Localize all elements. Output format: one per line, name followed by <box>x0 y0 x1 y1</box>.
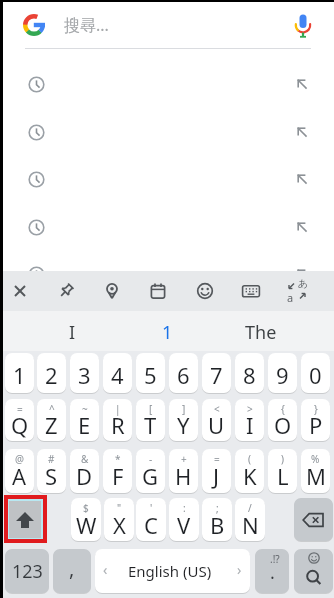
button[interactable]: 5 <box>136 353 165 393</box>
staticText: * <box>115 452 121 466</box>
button[interactable] <box>0 203 334 251</box>
staticText: ‹ <box>103 560 108 579</box>
button[interactable]: @ <box>5 449 34 493</box>
staticText: R <box>111 410 125 440</box>
button[interactable]: 123 <box>5 549 49 593</box>
button[interactable]: < <box>202 399 231 441</box>
staticText: = <box>214 452 220 466</box>
staticText: % <box>311 452 320 466</box>
button[interactable] <box>0 155 334 203</box>
button[interactable] <box>9 501 41 538</box>
staticText: C <box>144 510 158 540</box>
button[interactable] <box>234 274 268 308</box>
button[interactable]: $ <box>71 498 101 541</box>
staticText: ; <box>216 501 219 515</box>
button[interactable] <box>294 498 333 541</box>
button[interactable]: 4 <box>103 353 132 393</box>
button[interactable] <box>0 60 334 108</box>
staticText: 9 <box>276 360 289 390</box>
button[interactable]: 0 <box>301 353 330 393</box>
button[interactable]: .!? <box>255 549 289 593</box>
staticText: @ <box>15 452 24 466</box>
staticText: 4 <box>111 360 124 390</box>
button[interactable]: あ <box>280 274 314 308</box>
staticText: O <box>274 410 292 440</box>
button[interactable]: / <box>235 498 265 541</box>
button[interactable] <box>0 108 334 156</box>
staticText: K <box>243 461 257 491</box>
button[interactable]: % <box>301 449 330 493</box>
button[interactable]: * <box>103 449 132 493</box>
staticText: ] <box>182 402 186 416</box>
staticText: あ <box>298 277 309 290</box>
button[interactable] <box>95 274 129 308</box>
staticText: = <box>17 402 23 416</box>
button[interactable] <box>188 274 222 308</box>
button[interactable]: ] <box>169 399 198 441</box>
staticText: # <box>48 452 55 466</box>
button[interactable]: [ <box>136 399 165 441</box>
button[interactable] <box>49 274 83 308</box>
staticText: 2 <box>45 360 58 390</box>
staticText: 123 <box>12 559 43 584</box>
staticText: " <box>117 501 122 515</box>
button[interactable]: 2 <box>37 353 66 393</box>
staticText: The <box>245 320 277 345</box>
button[interactable]: + <box>169 449 198 493</box>
button[interactable]: > <box>235 399 264 441</box>
button[interactable]: , <box>53 549 91 593</box>
button[interactable]: 1 <box>122 311 212 351</box>
button[interactable]: The <box>216 311 306 351</box>
button[interactable]: ; <box>202 498 232 541</box>
staticText: U <box>208 410 225 440</box>
staticText: : <box>183 501 186 515</box>
button[interactable]: 7 <box>202 353 231 393</box>
staticText: I <box>69 320 76 345</box>
button[interactable] <box>3 274 37 308</box>
button[interactable]: 6 <box>169 353 198 393</box>
button[interactable]: " <box>104 498 134 541</box>
staticText: + <box>181 452 187 466</box>
staticText: H <box>175 461 192 491</box>
button[interactable]: | <box>103 399 132 441</box>
staticText: L <box>277 461 289 491</box>
staticText: Y <box>177 410 190 440</box>
staticText: N <box>242 510 259 540</box>
staticText: T <box>144 410 157 440</box>
staticText: < <box>214 402 220 416</box>
button[interactable]: & <box>70 449 99 493</box>
button[interactable]: = <box>202 449 231 493</box>
button[interactable]: 9 <box>268 353 297 393</box>
staticText: X <box>113 510 126 540</box>
staticText: [ <box>149 402 153 416</box>
staticText: ^ <box>49 402 55 416</box>
staticText: P <box>309 410 323 440</box>
button[interactable]: I <box>27 311 117 351</box>
button[interactable]: # <box>37 449 66 493</box>
button[interactable] <box>141 274 175 308</box>
button[interactable] <box>0 250 334 298</box>
button[interactable]: ) <box>268 449 297 493</box>
button[interactable]: 8 <box>235 353 264 393</box>
staticText: B <box>210 510 225 540</box>
button[interactable]: ' <box>136 498 166 541</box>
button[interactable]: : <box>169 498 199 541</box>
button[interactable]: ~ <box>70 399 99 441</box>
button[interactable]: } <box>301 399 330 441</box>
button[interactable]: 3 <box>70 353 99 393</box>
button[interactable]: 搜尋... <box>0 0 334 49</box>
button[interactable]: - <box>136 449 165 493</box>
staticText: ' <box>150 501 153 515</box>
button[interactable]: ‹ <box>95 549 250 593</box>
button[interactable] <box>294 549 333 593</box>
button[interactable]: ( <box>235 449 264 493</box>
button[interactable]: { <box>268 399 297 441</box>
staticText: ~ <box>82 402 88 416</box>
staticText: 6 <box>177 360 190 390</box>
staticText: 1 <box>162 320 173 345</box>
staticText: W <box>76 510 97 540</box>
button[interactable]: ^ <box>37 399 66 441</box>
staticText: 3 <box>78 360 91 390</box>
button[interactable]: 1 <box>5 353 34 393</box>
button[interactable]: = <box>5 399 34 441</box>
